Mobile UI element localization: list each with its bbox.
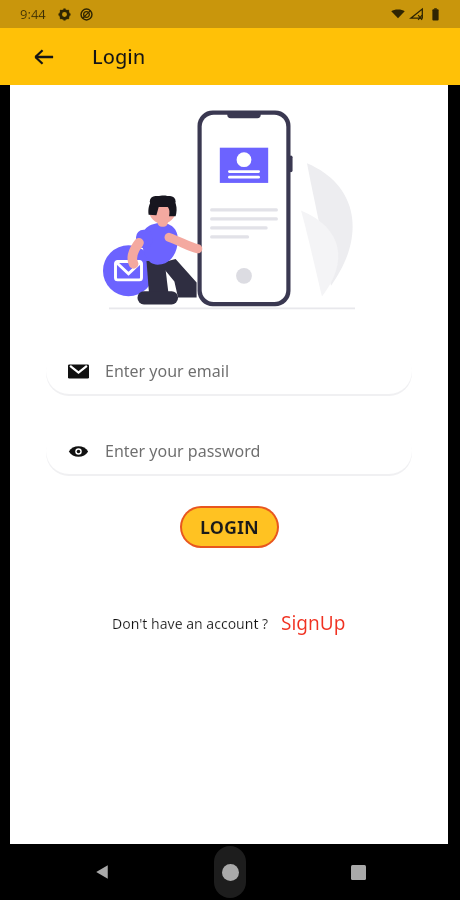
button[interactable]: Enter your password: [46, 428, 412, 474]
staticText: 9:44: [20, 5, 46, 23]
staticText: Don't have an account ?: [112, 614, 269, 633]
staticText: SignUp: [281, 610, 346, 636]
button[interactable]: Back: [24, 37, 64, 77]
staticText: Enter your email: [105, 360, 230, 382]
button[interactable]: Back: [82, 852, 122, 892]
button[interactable]: SignUp: [281, 610, 346, 636]
button[interactable]: Enter your email: [46, 348, 412, 394]
button[interactable]: LOGIN: [182, 508, 277, 546]
staticText: Login: [92, 43, 146, 70]
staticText: Enter your password: [105, 440, 261, 462]
button[interactable]: Home: [214, 846, 246, 898]
button[interactable]: Recent apps: [338, 852, 378, 892]
staticText: LOGIN: [200, 515, 259, 540]
